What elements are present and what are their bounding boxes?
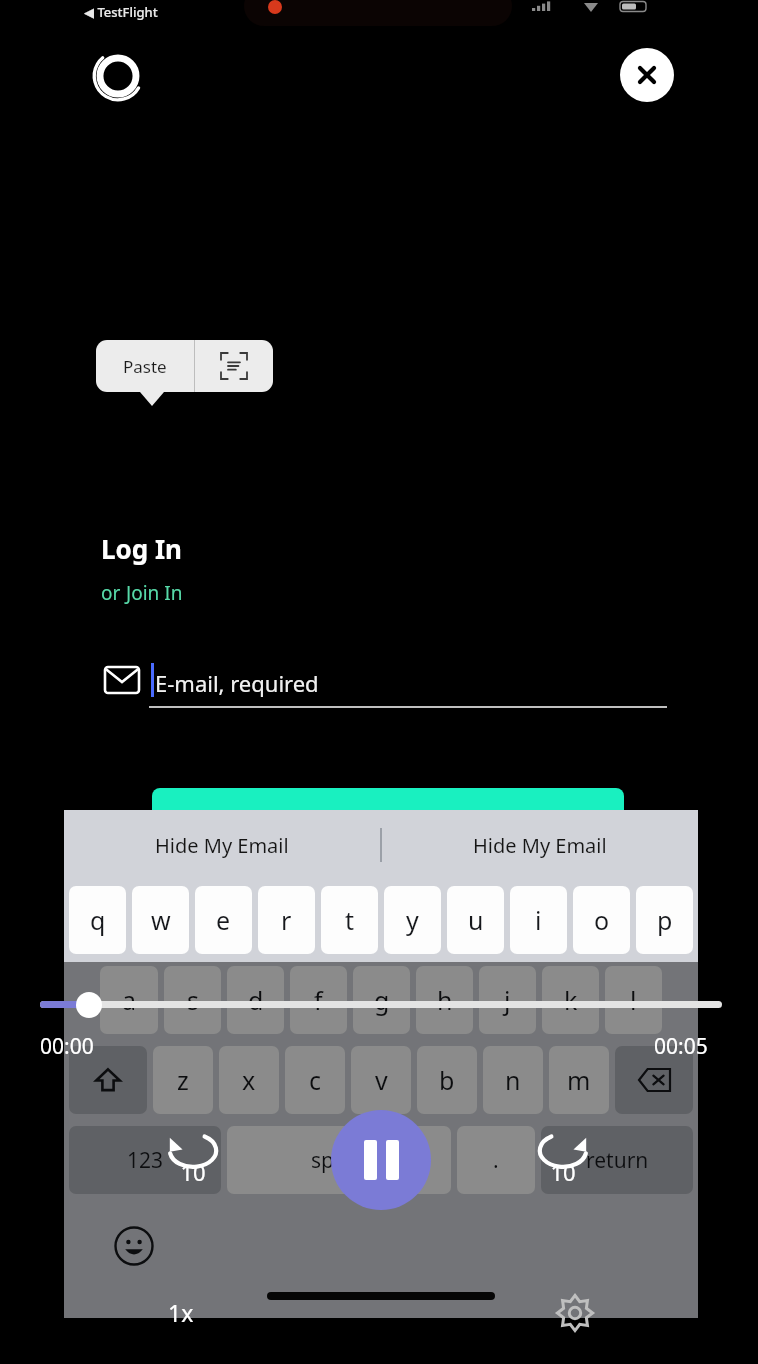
staticText: q [90,903,106,937]
button[interactable]: i [510,886,567,954]
staticText: 00:05 [654,1032,708,1061]
button[interactable]: n [483,1046,543,1114]
button[interactable]: k [542,966,599,1034]
staticText: or [101,580,126,606]
staticText: Log In [101,531,182,566]
button[interactable]: v [351,1046,411,1114]
staticText: 10 [550,1157,576,1187]
staticText: v [375,1063,388,1097]
button[interactable]: c [285,1046,345,1114]
button[interactable]: 123 [69,1126,221,1194]
button[interactable]: x [219,1046,279,1114]
button[interactable]: q [69,886,126,954]
button[interactable]: y [384,886,441,954]
staticText: w [151,903,171,937]
staticText: Join In [126,580,183,606]
button[interactable]: App logo [88,46,148,106]
staticText: Continue [344,807,433,834]
staticText: g [374,983,390,1017]
button[interactable]: b [417,1046,477,1114]
button[interactable]: Backspace [615,1046,693,1114]
button[interactable]: Scan text [195,340,273,392]
staticText: 00:00 [40,1032,94,1061]
button[interactable]: w [132,886,189,954]
staticText: i [535,903,542,937]
staticText: f [314,983,323,1017]
staticText: y [406,903,419,937]
button[interactable]: g [353,966,410,1034]
staticText: . [493,1146,499,1175]
button[interactable]: Forward 10 seconds [530,1128,596,1194]
button[interactable]: d [227,966,284,1034]
staticText: 10 [180,1157,206,1187]
button[interactable]: h [416,966,473,1034]
staticText: x [242,1063,256,1097]
staticText: 1x [168,1297,194,1328]
button[interactable]: o [573,886,630,954]
button[interactable]: Seek [76,992,102,1018]
staticText: 123 [127,1146,164,1175]
staticText: space [311,1146,368,1175]
button[interactable]: Hide My Email [64,810,380,880]
staticText: p [657,903,673,937]
button[interactable]: u [447,886,504,954]
button[interactable]: Pause [331,1110,431,1210]
button[interactable]: return [541,1126,693,1194]
button[interactable]: Paste [96,340,194,392]
staticText: Paste [123,355,167,378]
staticText: e [216,903,231,937]
staticText: s [187,983,199,1017]
staticText: ◀ TestFlight [84,3,158,21]
staticText: h [437,983,453,1017]
staticText: j [504,983,511,1017]
button[interactable]: Close [620,48,674,102]
staticText: E-mail, required [155,668,319,698]
staticText: c [309,1063,322,1097]
button[interactable]: Emoji [112,1224,156,1268]
button[interactable]: s [164,966,221,1034]
button[interactable]: e [195,886,252,954]
button[interactable]: z [153,1046,213,1114]
button[interactable]: Hide My Email [382,810,698,880]
staticText: z [177,1063,189,1097]
button[interactable]: p [636,886,693,954]
staticText: n [505,1063,521,1097]
button[interactable]: Settings [548,1286,602,1340]
staticText: k [564,983,578,1017]
button[interactable]: Rewind 10 seconds [160,1128,226,1194]
button[interactable]: m [549,1046,609,1114]
button[interactable]: a [100,966,158,1034]
staticText: u [468,903,484,937]
staticText: Hide My Email [155,832,289,859]
staticText: o [594,903,610,937]
button[interactable]: E-mail, required [101,655,671,715]
button[interactable]: f [290,966,347,1034]
staticText: d [248,983,264,1017]
staticText: return [586,1146,649,1175]
button[interactable]: space [227,1126,451,1194]
staticText: t [345,903,355,937]
button[interactable]: r [258,886,315,954]
button[interactable]: Continue [152,788,624,852]
staticText: Hide My Email [473,832,607,859]
staticText: l [630,983,637,1017]
staticText: a [122,983,137,1017]
button[interactable]: 1x [168,1292,224,1332]
button[interactable]: j [479,966,536,1034]
button[interactable]: l [605,966,662,1034]
button[interactable]: t [321,886,378,954]
staticText: m [567,1063,591,1097]
button[interactable]: or [101,580,183,606]
staticText: b [439,1063,455,1097]
button[interactable]: . [457,1126,535,1194]
staticText: r [281,903,292,937]
button[interactable]: Shift [69,1046,147,1114]
